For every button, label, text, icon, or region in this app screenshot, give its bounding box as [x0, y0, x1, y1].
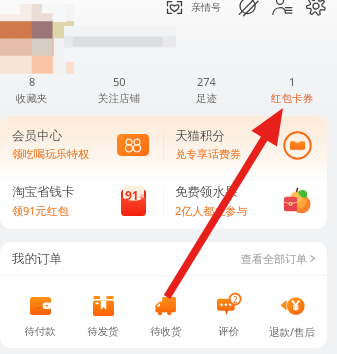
- staticText: 50: [113, 74, 126, 89]
- staticText: 元: [139, 194, 145, 202]
- button[interactable]: 待发货: [71, 276, 134, 348]
- staticText: 1: [289, 74, 296, 89]
- staticText: 天猫积分: [175, 128, 225, 144]
- button[interactable]: 天猫积分: [163, 116, 327, 173]
- button[interactable]: 2: [197, 276, 260, 348]
- button[interactable]: Account: [271, 0, 293, 17]
- button[interactable]: Settings: [305, 0, 327, 17]
- staticText: 红包卡券: [271, 92, 313, 105]
- button[interactable]: 免费领水果: [163, 173, 327, 229]
- staticText: 274: [197, 74, 216, 89]
- staticText: 足迹: [196, 92, 217, 105]
- button[interactable]: 亲情号: [166, 0, 228, 18]
- button[interactable]: 退款/售后: [260, 276, 323, 348]
- staticText: 兑专享话费券: [175, 147, 241, 161]
- staticText: 淘宝省钱卡: [12, 184, 75, 200]
- button[interactable]: 查看全部订单: [241, 242, 317, 275]
- button[interactable]: 50: [79, 71, 159, 107]
- staticText: 会员中心: [12, 128, 62, 144]
- staticText: 我的订单: [12, 251, 62, 267]
- staticText: 查看全部订单: [241, 252, 307, 266]
- button[interactable]: 8: [0, 71, 72, 107]
- staticText: 待收货: [150, 325, 182, 338]
- staticText: 关注店铺: [98, 92, 140, 105]
- staticText: 8: [29, 74, 36, 89]
- button[interactable]: 待付款: [9, 276, 71, 348]
- staticText: 2: [233, 294, 238, 305]
- button[interactable]: 1: [252, 71, 332, 107]
- button[interactable]: 274: [166, 71, 246, 107]
- button[interactable]: 待收货: [134, 276, 197, 348]
- staticText: 91: [125, 187, 139, 203]
- button[interactable]: 会员中心: [0, 116, 163, 173]
- staticText: 评价: [218, 325, 239, 338]
- staticText: 待付款: [24, 325, 56, 338]
- staticText: 免费领水果: [175, 184, 238, 200]
- button[interactable]: 淘宝省钱卡: [0, 173, 163, 229]
- staticText: 2亿人都在参与: [175, 203, 248, 218]
- staticText: 待发货: [87, 325, 119, 338]
- button[interactable]: Theme: [237, 0, 259, 17]
- staticText: 亲情号: [191, 1, 221, 14]
- staticText: 收藏夹: [16, 92, 48, 105]
- staticText: 领吃喝玩乐特权: [12, 147, 89, 161]
- staticText: 领91元红包: [12, 203, 69, 218]
- staticText: 退款/售后: [269, 325, 315, 339]
